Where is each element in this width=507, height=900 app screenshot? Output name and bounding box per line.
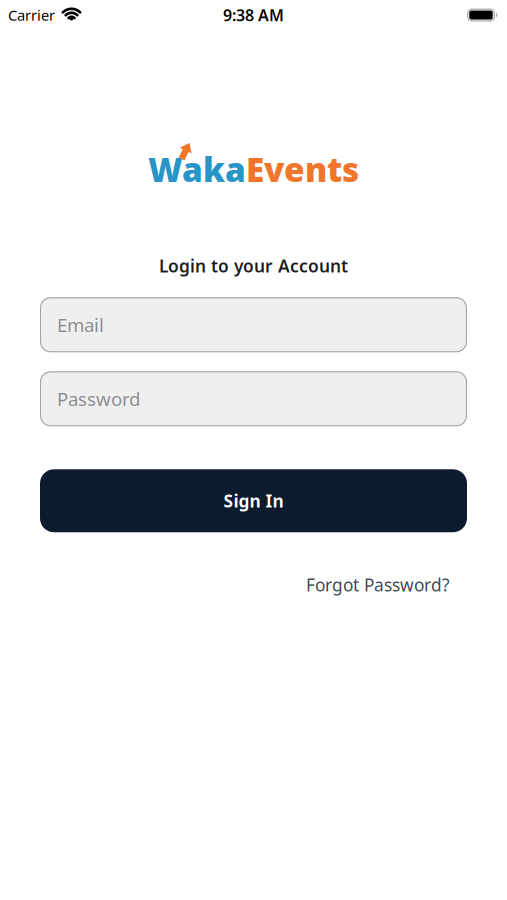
staticText: Login to your Account: [159, 254, 348, 277]
button[interactable]: Sign In: [40, 469, 467, 532]
staticText: Sign In: [223, 489, 283, 512]
button[interactable]: Forgot Password?: [306, 573, 450, 596]
staticText: Carrier: [8, 5, 55, 25]
button[interactable]: Email: [40, 297, 467, 352]
staticText: Waka: [148, 147, 246, 191]
staticText: Password: [57, 386, 140, 411]
staticText: 9:38 AM: [223, 4, 284, 26]
button[interactable]: Password: [40, 371, 467, 426]
staticText: Events: [246, 147, 359, 191]
staticText: Forgot Password?: [306, 573, 450, 596]
staticText: Email: [57, 312, 104, 337]
